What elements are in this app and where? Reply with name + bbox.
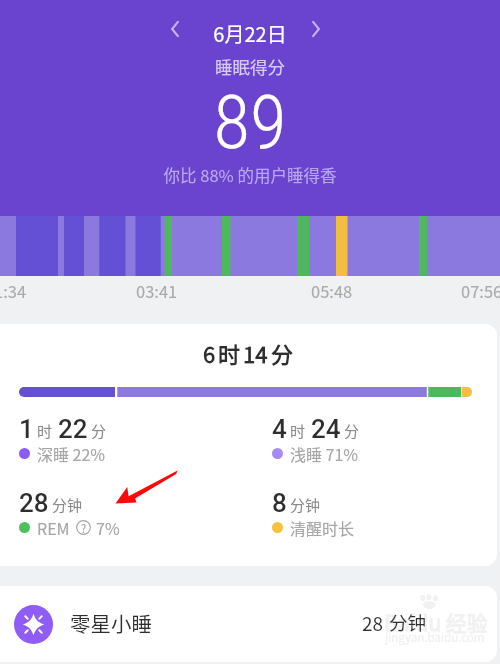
staticText: 时 <box>218 337 241 369</box>
button[interactable]: Next day <box>296 9 336 49</box>
staticText: 07:56 <box>461 279 500 303</box>
staticText: 时 <box>37 420 53 442</box>
staticText: 分钟 <box>52 494 83 516</box>
staticText: 6月22日 <box>0 19 500 48</box>
staticText: 8 <box>272 488 287 518</box>
button[interactable]: 28 <box>19 488 272 532</box>
button[interactable]: 8 <box>272 488 472 532</box>
staticText: 分钟 <box>389 609 427 636</box>
button[interactable]: 4 <box>272 414 472 458</box>
staticText: ? <box>81 520 87 535</box>
staticText: 你比 88% 的用户睡得香 <box>0 163 500 187</box>
staticText: 浅睡 71% <box>290 442 359 465</box>
staticText: 分 <box>91 420 107 442</box>
staticText: 分 <box>271 337 294 369</box>
staticText: 1 <box>19 414 34 444</box>
staticText: 时 <box>290 420 306 442</box>
staticText: jingyan.baidu.com <box>385 629 485 646</box>
staticText: 零星小睡 <box>70 608 152 638</box>
staticText: 分钟 <box>290 494 321 516</box>
staticText: 24 <box>311 414 341 444</box>
staticText: 03:41 <box>136 279 178 303</box>
staticText: Baidu 经验 <box>384 607 488 637</box>
staticText: 分 <box>344 420 360 442</box>
button[interactable]: Previous day <box>155 9 195 49</box>
staticText: 1:34 <box>0 279 27 303</box>
staticText: 睡眠得分 <box>0 54 500 79</box>
staticText: 89 <box>0 78 500 166</box>
staticText: 深睡 22% <box>37 442 106 465</box>
button[interactable]: 零星小睡 <box>0 586 497 662</box>
button[interactable]: 1 <box>19 414 272 458</box>
staticText: 22 <box>58 414 88 444</box>
staticText: 4 <box>272 414 287 444</box>
staticText: 14 <box>243 337 268 369</box>
staticText: 05:48 <box>311 279 353 303</box>
staticText: REM <box>37 516 70 539</box>
staticText: 清醒时长 <box>290 516 355 539</box>
staticText: 7% <box>96 516 120 539</box>
staticText: 28 <box>362 609 384 637</box>
staticText: 6 <box>203 337 216 369</box>
staticText: 28 <box>19 488 49 518</box>
